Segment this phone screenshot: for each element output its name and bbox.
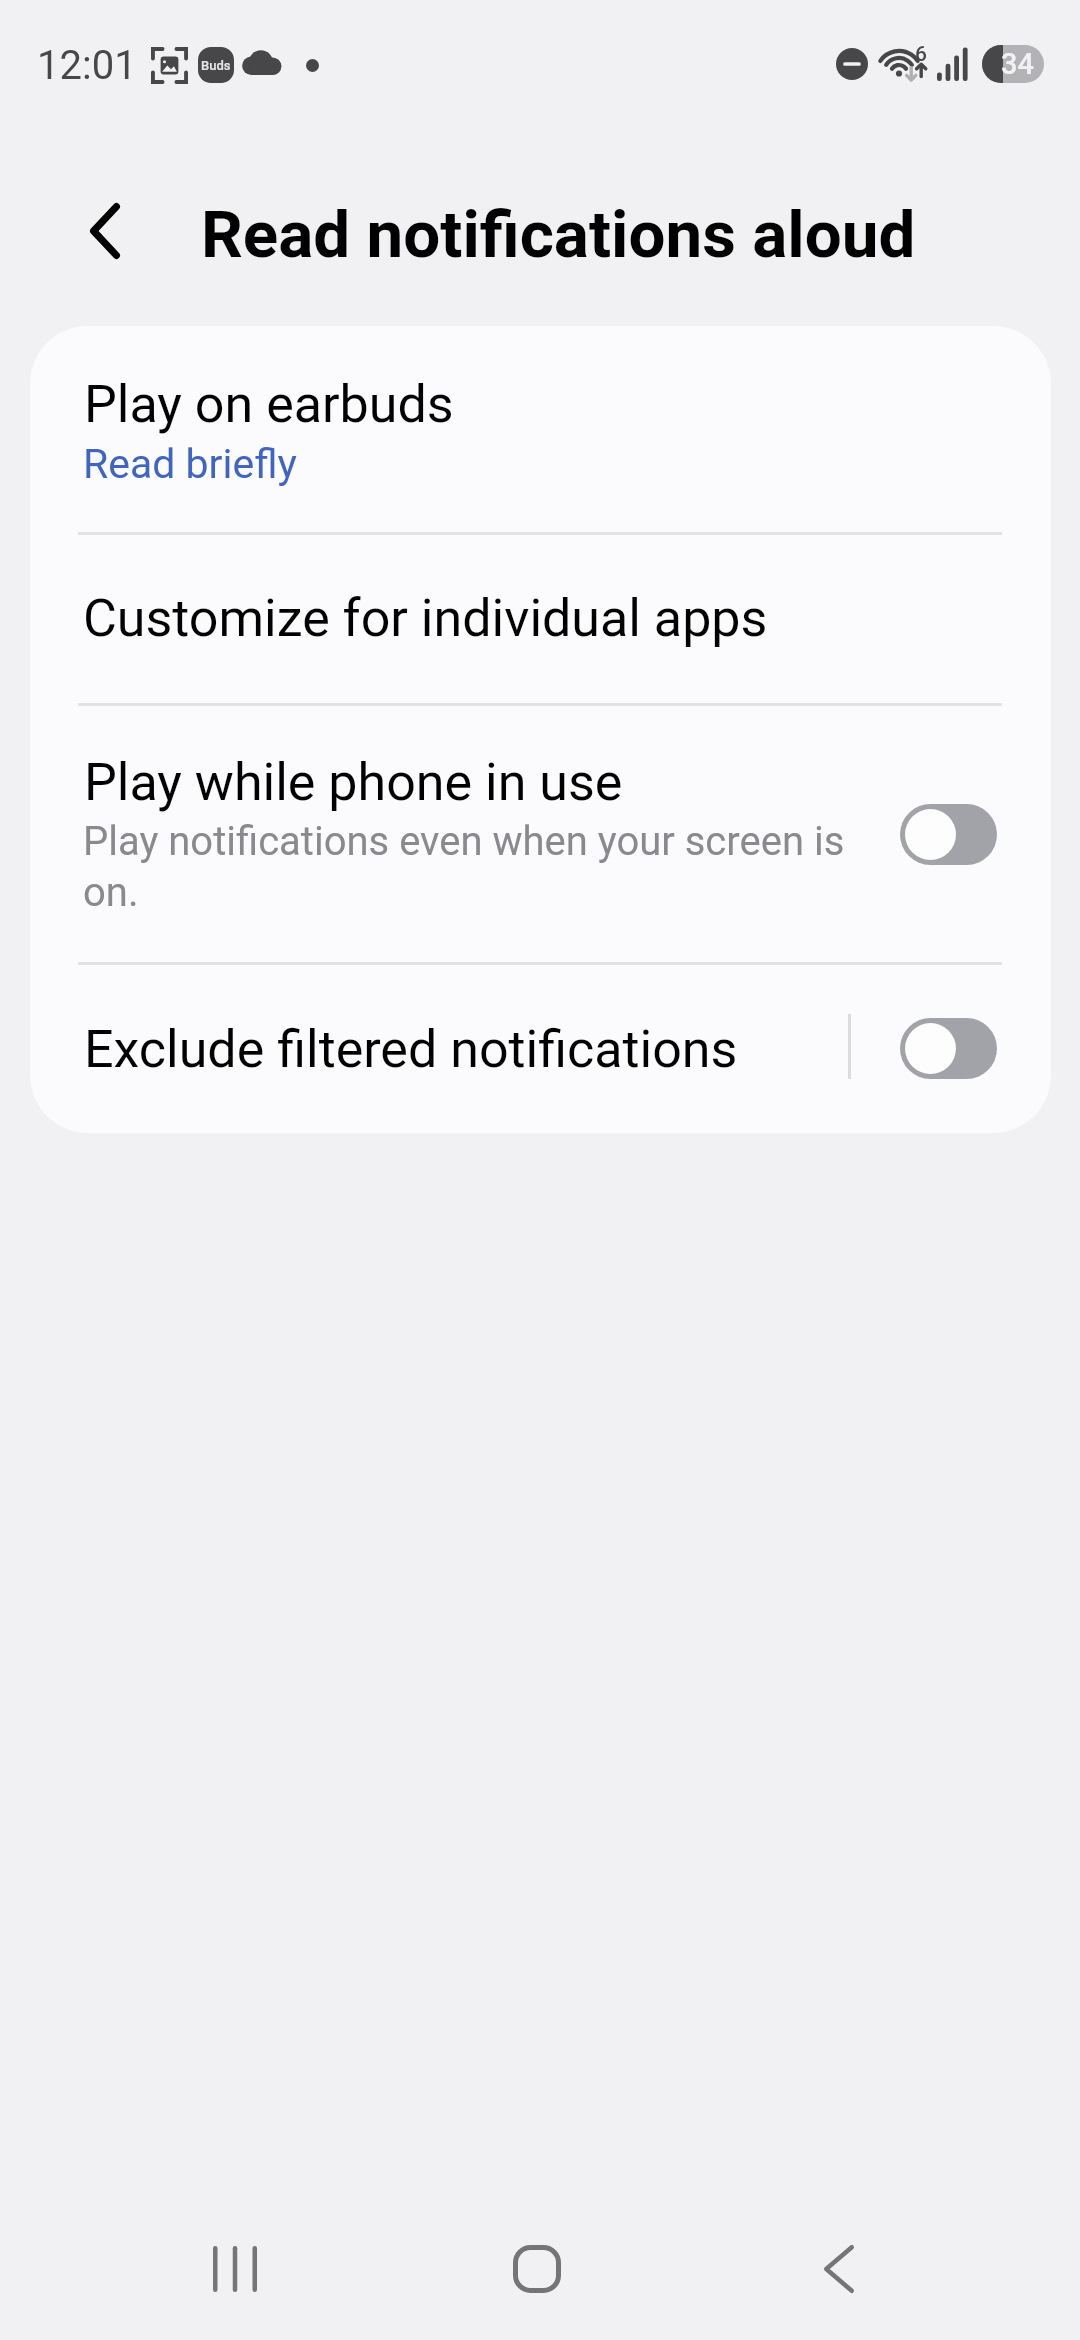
staticText: Customize for individual apps bbox=[83, 588, 768, 649]
button[interactable]: Off bbox=[900, 1018, 997, 1079]
button[interactable]: Exclude filtered notifications bbox=[30, 965, 1051, 1132]
button[interactable]: Back bbox=[764, 2194, 914, 2340]
staticText: Play on earbuds bbox=[84, 374, 454, 435]
staticText: 12:01 bbox=[37, 42, 137, 89]
button[interactable]: Customize for individual apps bbox=[30, 535, 1051, 703]
staticText: 6 bbox=[915, 42, 927, 67]
staticText: 34 bbox=[1001, 47, 1034, 81]
staticText: Read briefly bbox=[83, 440, 297, 488]
staticText: Play notifications even when your screen… bbox=[83, 818, 873, 915]
staticText: Read notifications aloud bbox=[201, 196, 916, 273]
staticText: Buds bbox=[201, 58, 231, 73]
button[interactable]: Off bbox=[900, 804, 997, 865]
button[interactable]: Play while phone in use bbox=[30, 706, 1051, 962]
staticText: Exclude filtered notifications bbox=[84, 1019, 738, 1080]
staticText: Play while phone in use bbox=[84, 752, 623, 813]
button[interactable]: Play on earbuds bbox=[30, 326, 1051, 532]
button[interactable]: Navigate up bbox=[60, 186, 150, 276]
button[interactable]: Home bbox=[462, 2194, 612, 2340]
button[interactable]: Recent apps bbox=[160, 2194, 310, 2340]
